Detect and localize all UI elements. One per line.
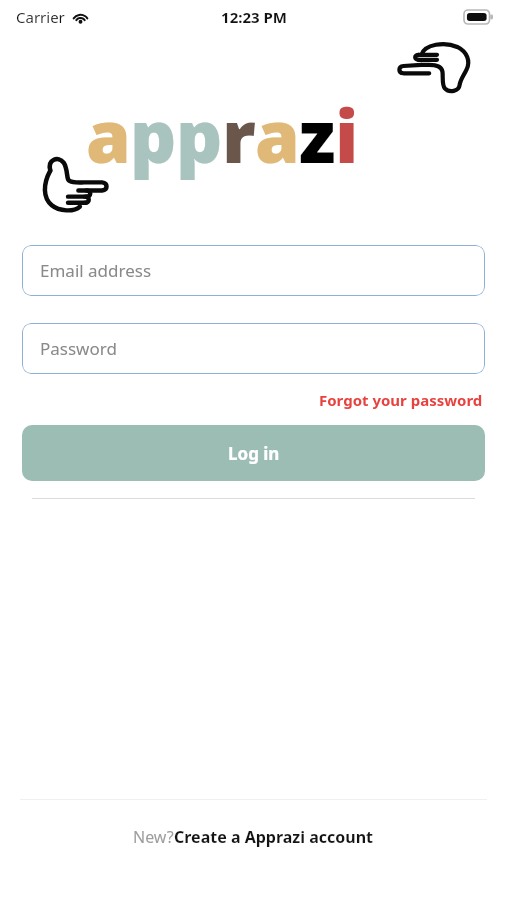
- staticText: i: [335, 86, 358, 184]
- other: Pointing hand: [398, 38, 476, 94]
- staticText: a: [255, 86, 299, 184]
- staticText: New?: [133, 826, 174, 848]
- staticText: Carrier: [16, 7, 65, 27]
- button[interactable]: New?: [0, 800, 507, 874]
- button[interactable]: Log in: [22, 425, 485, 481]
- staticText: 12:23 PM: [221, 7, 287, 27]
- button[interactable]: Email address: [22, 245, 485, 296]
- staticText: p: [130, 86, 176, 184]
- staticText: Email address: [40, 259, 152, 282]
- staticText: Forgot your password: [319, 390, 483, 410]
- button[interactable]: Forgot your password: [317, 388, 485, 412]
- staticText: a: [86, 86, 130, 184]
- staticText: r: [222, 86, 255, 184]
- button[interactable]: Password: [22, 323, 485, 374]
- staticText: Password: [40, 337, 117, 360]
- staticText: Log in: [228, 442, 280, 465]
- other: Pointing hand: [34, 152, 108, 214]
- staticText: Create a Apprazi account: [174, 826, 374, 848]
- staticText: p: [176, 86, 222, 184]
- staticText: z: [299, 86, 335, 184]
